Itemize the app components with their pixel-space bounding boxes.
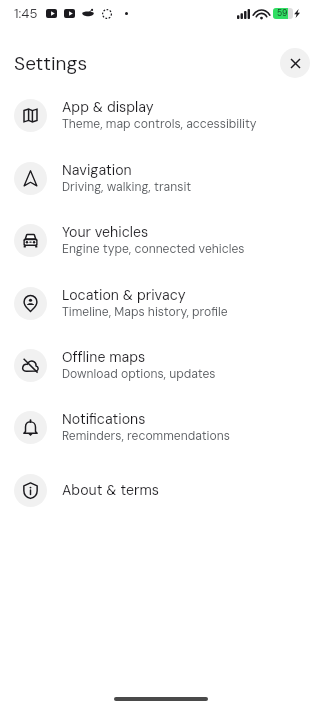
staticText: Settings <box>14 51 88 76</box>
button[interactable]: Your vehicles <box>0 209 321 271</box>
staticText: Engine type, connected vehicles <box>62 241 245 257</box>
staticText: App & display <box>62 98 154 116</box>
staticText: Navigation <box>62 161 132 179</box>
button[interactable]: About & terms <box>0 459 321 521</box>
staticText: Timeline, Maps history, profile <box>62 304 228 320</box>
staticText: Driving, walking, transit <box>62 179 192 195</box>
button[interactable]: Notifications <box>0 396 321 458</box>
staticText: Location & privacy <box>62 286 186 304</box>
button[interactable]: Location & privacy <box>0 272 321 334</box>
staticText: Offline maps <box>62 348 146 366</box>
button[interactable]: App & display <box>0 84 321 146</box>
button[interactable]: Navigation <box>0 147 321 209</box>
staticText: 59 <box>277 8 288 19</box>
staticText: Notifications <box>62 410 146 428</box>
staticText: Download options, updates <box>62 366 216 382</box>
staticText: 1:45 <box>14 5 38 22</box>
staticText: About & terms <box>62 481 159 499</box>
button[interactable]: Offline maps <box>0 334 321 396</box>
staticText: Your vehicles <box>62 223 149 241</box>
button[interactable]: Close <box>280 48 310 78</box>
staticText: Reminders, recommendations <box>62 428 230 444</box>
staticText: Theme, map controls, accessibility <box>62 116 257 132</box>
